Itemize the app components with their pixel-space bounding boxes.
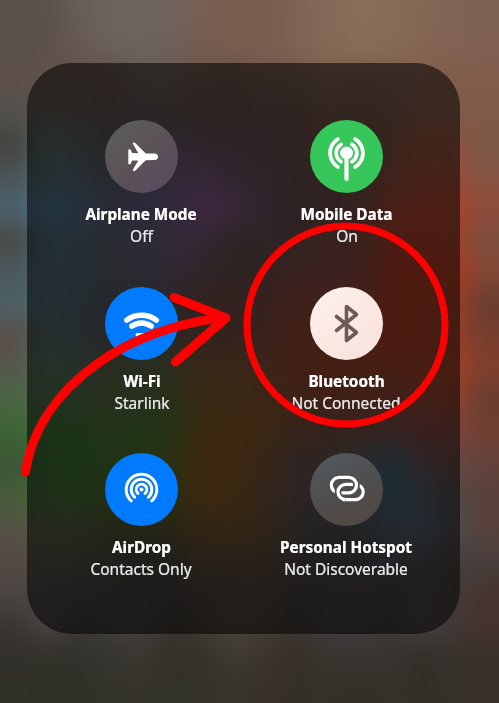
staticText: Mobile Data [300, 204, 393, 225]
other: Bluetooth [310, 287, 383, 360]
button[interactable]: Airplane Mode [36, 120, 246, 246]
button[interactable]: Wi-Fi [36, 287, 246, 413]
staticText: Wi-Fi [123, 371, 161, 392]
button[interactable]: AirDrop [36, 453, 246, 579]
button[interactable]: Bluetooth [241, 287, 451, 413]
staticText: Contacts Only [90, 558, 192, 579]
staticText: Not Connected [291, 392, 401, 413]
button[interactable]: Mobile Data [241, 120, 451, 246]
other: AirDrop [105, 453, 178, 526]
staticText: Bluetooth [308, 371, 385, 392]
staticText: Not Discoverable [284, 558, 408, 579]
staticText: Starlink [114, 392, 170, 413]
other: Personal Hotspot [310, 453, 383, 526]
staticText: On [336, 225, 358, 246]
button[interactable]: Personal Hotspot [241, 453, 451, 579]
staticText: AirDrop [112, 537, 171, 558]
other: Mobile Data [310, 120, 383, 193]
staticText: Personal Hotspot [280, 537, 412, 558]
other: Airplane Mode [105, 120, 178, 193]
other: Wi-Fi [105, 287, 178, 360]
staticText: Airplane Mode [85, 204, 197, 225]
staticText: Off [130, 225, 153, 246]
